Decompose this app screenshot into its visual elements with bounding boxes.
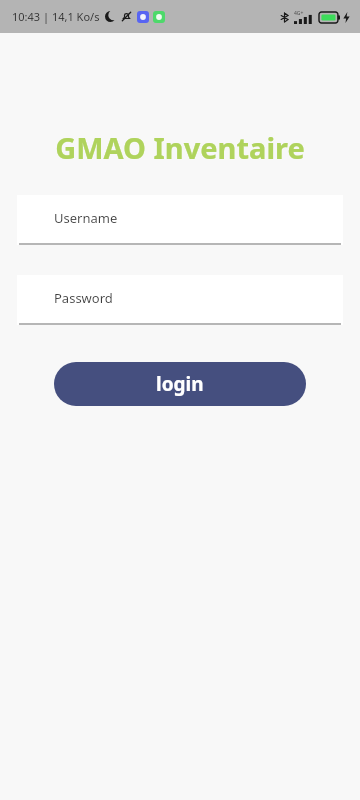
staticText: login bbox=[156, 371, 204, 397]
button[interactable]: Password bbox=[17, 275, 343, 325]
button[interactable]: Username bbox=[17, 195, 343, 245]
staticText: GMAO Inventaire bbox=[0, 128, 360, 167]
staticText: Username bbox=[54, 209, 118, 227]
staticText: 4G+ bbox=[294, 10, 304, 17]
staticText: Password bbox=[54, 289, 113, 307]
button[interactable]: login bbox=[54, 362, 306, 406]
staticText: 10:43 | 14,1 Ko/s bbox=[12, 9, 100, 24]
